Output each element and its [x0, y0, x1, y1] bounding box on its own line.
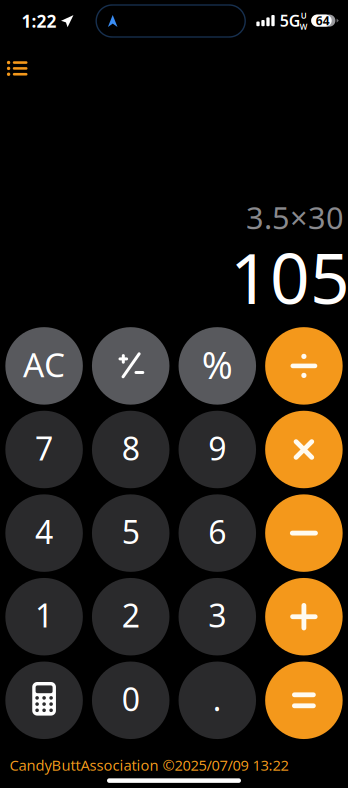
button[interactable]: 7 [5, 411, 83, 488]
button[interactable]: . [179, 661, 256, 739]
staticText: 8 [122, 427, 140, 469]
staticText: 4 [35, 510, 53, 553]
button[interactable]: Minus [265, 494, 343, 572]
staticText: U [301, 10, 307, 21]
staticText: W [300, 21, 308, 32]
staticText: 2 [122, 594, 140, 636]
staticText: . [213, 678, 222, 720]
button[interactable]: 4 [5, 494, 83, 572]
button[interactable]: 2 [92, 578, 169, 655]
button[interactable]: 8 [92, 411, 169, 488]
button[interactable]: 6 [179, 494, 256, 572]
button[interactable]: 5 [92, 494, 169, 572]
button[interactable]: Calculator [5, 661, 83, 739]
button[interactable]: Plus [265, 578, 343, 655]
staticText: 1:22 [22, 9, 57, 32]
button[interactable]: 0 [92, 661, 169, 739]
staticText: 5 [122, 510, 140, 553]
staticText: 6 [208, 510, 226, 553]
button[interactable]: Divide [265, 327, 343, 405]
staticText: 5G [280, 10, 301, 31]
button[interactable]: Plus minus [92, 327, 169, 405]
staticText: % [202, 340, 233, 389]
button[interactable]: 9 [179, 411, 256, 488]
button[interactable]: % [179, 327, 256, 405]
staticText: 3.5×30 [246, 197, 344, 238]
staticText: 64 [316, 13, 330, 28]
button[interactable]: 3 [179, 578, 256, 655]
staticText: 1 [35, 594, 53, 636]
staticText: 105 [230, 231, 348, 323]
staticText: 9 [208, 427, 226, 469]
staticText: 0 [122, 678, 140, 720]
button[interactable]: 1 [5, 578, 83, 655]
staticText: 7 [35, 427, 53, 469]
button[interactable]: Equals [265, 661, 343, 739]
button[interactable]: History [0, 48, 39, 88]
button[interactable]: Multiply [265, 411, 343, 488]
button[interactable]: AC [5, 327, 83, 405]
staticText: CandyButtAssociation ©2025/07/09 13:22 [9, 755, 288, 775]
staticText: 3 [208, 594, 226, 636]
staticText: AC [23, 342, 65, 387]
